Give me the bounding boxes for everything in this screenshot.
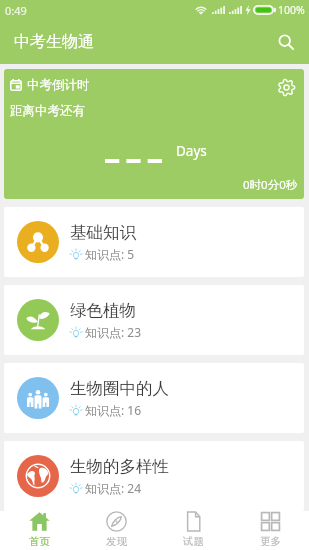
- staticText: 中考倒计时: [27, 77, 90, 93]
- staticText: 中考生物通: [14, 32, 94, 52]
- staticText: 0:49: [5, 3, 27, 18]
- button[interactable]: 生物圈中的人: [4, 363, 304, 433]
- staticText: 距离中考还有: [10, 103, 85, 119]
- staticText: 知识点: 24: [85, 480, 142, 496]
- button[interactable]: 试题: [155, 511, 232, 550]
- button[interactable]: 首页: [0, 511, 78, 550]
- button[interactable]: 更多: [232, 511, 309, 550]
- button[interactable]: 发现: [78, 511, 155, 550]
- button[interactable]: 生物的多样性: [4, 441, 304, 511]
- staticText: 0时0分0秒: [243, 177, 298, 193]
- staticText: 知识点: 16: [85, 402, 142, 418]
- staticText: 知识点: 5: [85, 246, 135, 262]
- staticText: 100%: [278, 3, 305, 17]
- button[interactable]: Search: [269, 25, 303, 59]
- button[interactable]: 基础知识: [4, 207, 304, 277]
- staticText: 生物圈中的人: [70, 378, 169, 399]
- staticText: 首页: [29, 535, 50, 546]
- staticText: 更多: [260, 535, 281, 546]
- staticText: 知识点: 23: [85, 324, 142, 340]
- staticText: 生物的多样性: [70, 456, 169, 477]
- staticText: 绿色植物: [70, 300, 136, 321]
- staticText: 试题: [183, 535, 204, 546]
- staticText: 发现: [106, 535, 127, 546]
- staticText: Days: [176, 142, 207, 160]
- button[interactable]: Settings: [274, 75, 298, 99]
- button[interactable]: 绿色植物: [4, 285, 304, 355]
- staticText: 基础知识: [70, 222, 136, 243]
- button[interactable]: 中考倒计时: [4, 69, 304, 199]
